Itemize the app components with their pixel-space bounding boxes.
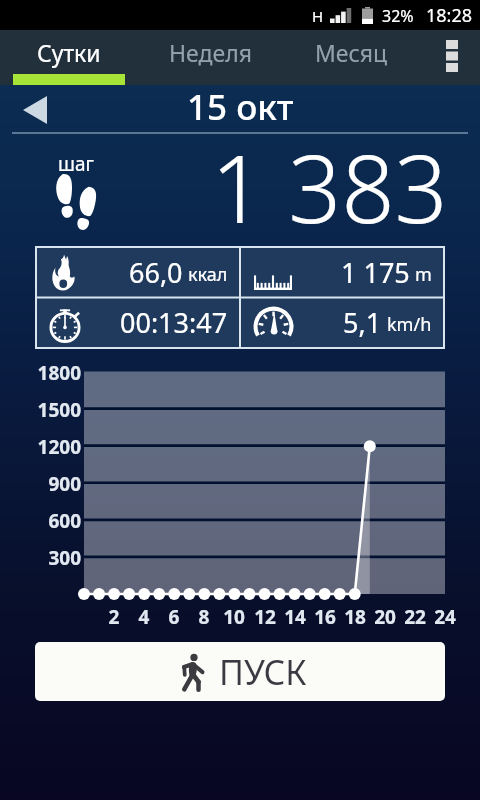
staticText: 1200 [0, 434, 81, 460]
staticText: Неделя [169, 37, 252, 68]
staticText: 4 [124, 604, 164, 630]
staticText: 2 [94, 604, 134, 630]
button[interactable]: Месяц [281, 30, 421, 85]
button[interactable]: Previous day [10, 85, 60, 135]
staticText: 1 175 [341, 254, 410, 291]
staticText: 15 окт [187, 83, 294, 131]
staticText: 5,1 [343, 304, 382, 341]
button[interactable]: ПУСК [35, 642, 445, 701]
staticText: Сутки [37, 37, 101, 68]
staticText: H [312, 6, 324, 26]
button[interactable]: Неделя [141, 30, 280, 85]
staticText: 16 [305, 604, 345, 630]
staticText: Месяц [315, 37, 387, 68]
staticText: 32% [382, 5, 414, 27]
button[interactable]: More options [424, 30, 480, 85]
staticText: 14 [275, 604, 315, 630]
staticText: 10 [214, 604, 254, 630]
staticText: 8 [184, 604, 224, 630]
staticText: 18 [335, 604, 375, 630]
staticText: 1 383 [211, 124, 448, 251]
staticText: 6 [154, 604, 194, 630]
staticText: 20 [365, 604, 405, 630]
staticText: 00:13:47 [120, 304, 228, 341]
staticText: 22 [395, 604, 435, 630]
staticText: 900 [0, 471, 81, 497]
button[interactable]: Сутки [13, 30, 125, 85]
staticText: 66,0 [129, 254, 183, 291]
staticText: 1500 [0, 397, 81, 423]
staticText: 300 [0, 545, 81, 571]
staticText: 24 [425, 604, 465, 630]
staticText: шаг [58, 151, 94, 177]
staticText: 18:28 [426, 3, 473, 28]
staticText: 12 [245, 604, 285, 630]
staticText: m [415, 262, 432, 287]
staticText: ккал [188, 262, 228, 287]
staticText: ПУСК [219, 649, 307, 695]
staticText: 1800 [0, 360, 81, 386]
staticText: 600 [0, 508, 81, 534]
staticText: km/h [387, 312, 432, 337]
